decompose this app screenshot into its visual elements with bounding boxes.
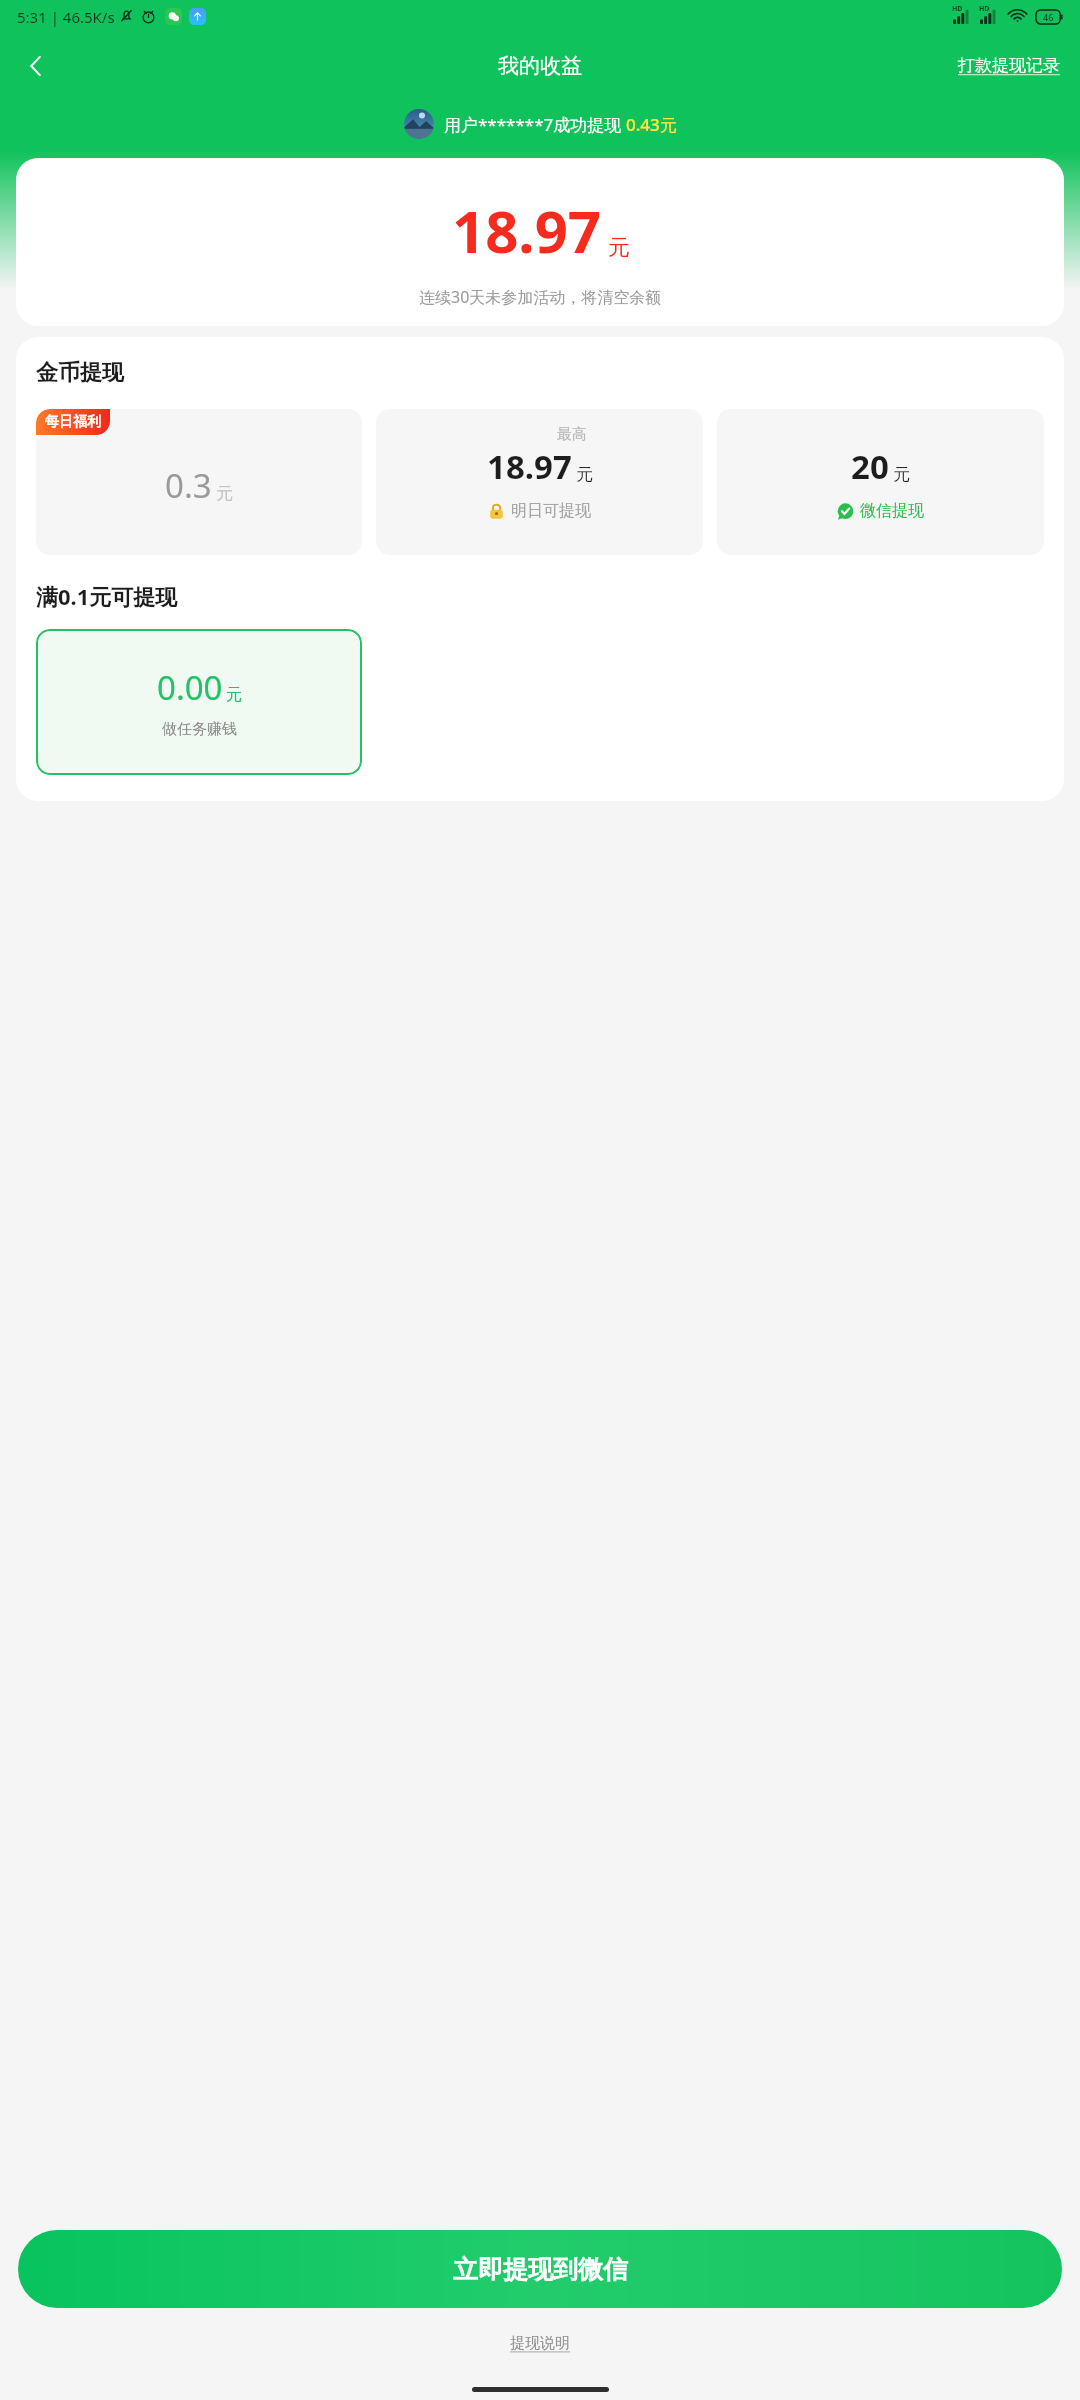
staticText: 元 bbox=[608, 234, 630, 262]
staticText: 明日可提现 bbox=[511, 501, 591, 521]
staticText: 元 bbox=[226, 685, 242, 705]
button[interactable]: 打款提现记录 bbox=[952, 47, 1066, 84]
staticText: 立即提现到微信 bbox=[453, 2254, 628, 2285]
staticText: 做任务赚钱 bbox=[162, 720, 237, 739]
staticText: 打款提现记录 bbox=[958, 55, 1060, 76]
button[interactable]: 18.97 bbox=[16, 158, 1064, 326]
staticText: 5:31 | 46.5K/s bbox=[17, 7, 115, 27]
button[interactable]: 提现说明 bbox=[500, 2330, 580, 2357]
staticText: 满0.1元可提现 bbox=[36, 581, 178, 611]
staticText: 用户*******7成功提现 bbox=[444, 113, 626, 136]
staticText: 20 bbox=[851, 444, 889, 489]
staticText: 我的收益 bbox=[498, 53, 582, 79]
staticText: 微信提现 bbox=[860, 501, 924, 521]
staticText: 连续30天未参加活动，将清空余额 bbox=[419, 286, 662, 308]
staticText: 元 bbox=[893, 464, 910, 485]
staticText: 18.97 bbox=[452, 191, 602, 270]
staticText: 元 bbox=[216, 483, 233, 504]
staticText: 46 bbox=[1043, 11, 1054, 23]
staticText: 最高 bbox=[557, 425, 587, 444]
staticText: HD bbox=[952, 4, 963, 14]
staticText: 提现说明 bbox=[510, 2334, 570, 2353]
staticText: 金币提现 bbox=[36, 359, 124, 387]
staticText: 0.43元 bbox=[626, 113, 677, 136]
button[interactable]: 0.00 bbox=[36, 629, 362, 775]
staticText: 0.3 bbox=[165, 463, 212, 508]
staticText: 每日福利 bbox=[45, 413, 101, 431]
button[interactable]: 立即提现到微信 bbox=[18, 2230, 1062, 2308]
staticText: HD bbox=[979, 4, 990, 14]
button[interactable]: 最高 bbox=[376, 409, 703, 555]
staticText: 18.97 bbox=[487, 444, 572, 489]
button[interactable]: 用户*******7成功提现 bbox=[0, 104, 1080, 144]
staticText: 元 bbox=[576, 464, 593, 485]
button[interactable]: Back bbox=[8, 38, 64, 94]
staticText: 0.00 bbox=[157, 665, 223, 710]
button[interactable]: 每日福利 bbox=[36, 409, 362, 555]
button[interactable]: 20 bbox=[717, 409, 1044, 555]
